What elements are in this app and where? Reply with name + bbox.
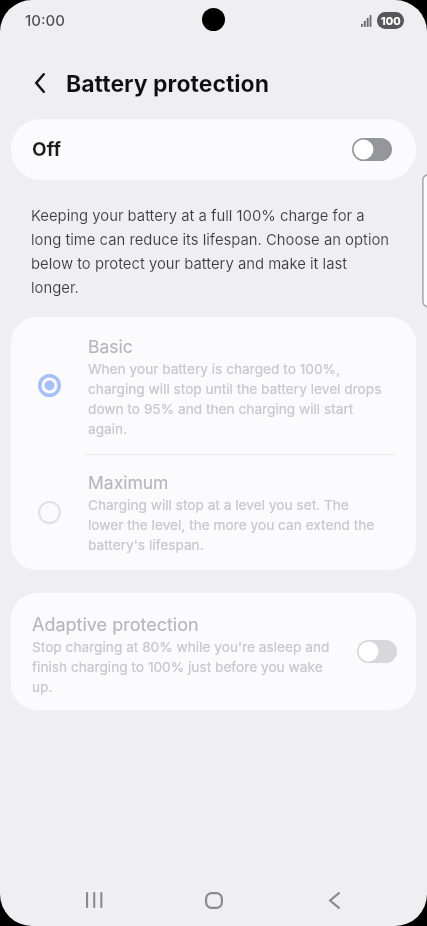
button[interactable]: Home: [186, 877, 242, 923]
staticText: Adaptive protection: [32, 614, 199, 636]
button[interactable]: Adaptive protection: [11, 593, 416, 710]
button[interactable]: Back: [306, 877, 362, 923]
staticText: Charging will stop at a level you set. T…: [88, 497, 388, 553]
staticText: 100: [381, 14, 401, 27]
button[interactable]: Off: [11, 119, 416, 180]
staticText: Battery protection: [66, 70, 270, 98]
button[interactable]: Maximum: [11, 455, 416, 570]
staticText: Off: [32, 138, 61, 161]
staticText: Stop charging at 80% while you're asleep…: [32, 639, 340, 695]
button[interactable]: Back: [20, 63, 60, 103]
button[interactable]: Recent apps: [66, 877, 122, 923]
staticText: Maximum: [88, 472, 169, 493]
staticText: Basic: [88, 336, 133, 357]
staticText: When your battery is charged to 100%, ch…: [88, 361, 388, 437]
staticText: 10:00: [25, 11, 65, 29]
staticText: Keeping your battery at a full 100% char…: [31, 207, 393, 297]
button[interactable]: Basic: [11, 317, 416, 454]
